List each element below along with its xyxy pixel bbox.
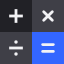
button[interactable]: Equals — [32, 32, 64, 64]
button[interactable]: Add — [0, 0, 32, 32]
button[interactable]: Multiply — [32, 0, 64, 32]
button[interactable]: Divide — [0, 32, 32, 64]
